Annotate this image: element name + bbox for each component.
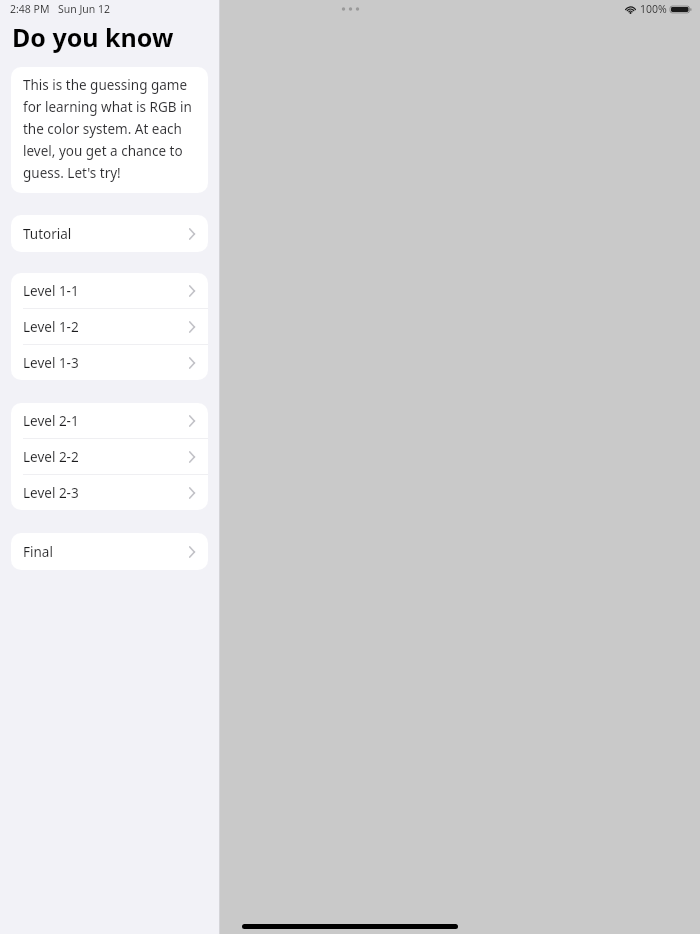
staticText: Level 1-1 — [23, 282, 79, 300]
staticText: Tutorial — [23, 225, 72, 243]
staticText: 2:48 PM — [10, 2, 50, 16]
staticText: Level 1-3 — [23, 354, 79, 372]
button[interactable]: Level 2-2 — [11, 439, 208, 474]
button[interactable]: Final — [11, 533, 208, 570]
staticText: This is the guessing game for learning w… — [23, 76, 196, 182]
staticText: Level 2-3 — [23, 484, 79, 502]
staticText: Final — [23, 543, 53, 561]
button[interactable]: Tutorial — [11, 215, 208, 252]
button[interactable]: Level 1-1 — [11, 273, 208, 308]
button[interactable]: Level 1-3 — [11, 345, 208, 380]
staticText: Level 2-2 — [23, 448, 79, 466]
staticText: Do you know RG… — [12, 20, 207, 54]
button[interactable]: Level 2-1 — [11, 403, 208, 438]
button[interactable]: Level 2-3 — [11, 475, 208, 510]
button[interactable]: Multitasking controls — [341, 6, 359, 12]
staticText: 100% — [640, 2, 667, 16]
staticText: Sun Jun 12 — [58, 2, 111, 16]
staticText: Level 2-1 — [23, 412, 79, 430]
staticText: Level 1-2 — [23, 318, 79, 336]
button[interactable]: Level 1-2 — [11, 309, 208, 344]
